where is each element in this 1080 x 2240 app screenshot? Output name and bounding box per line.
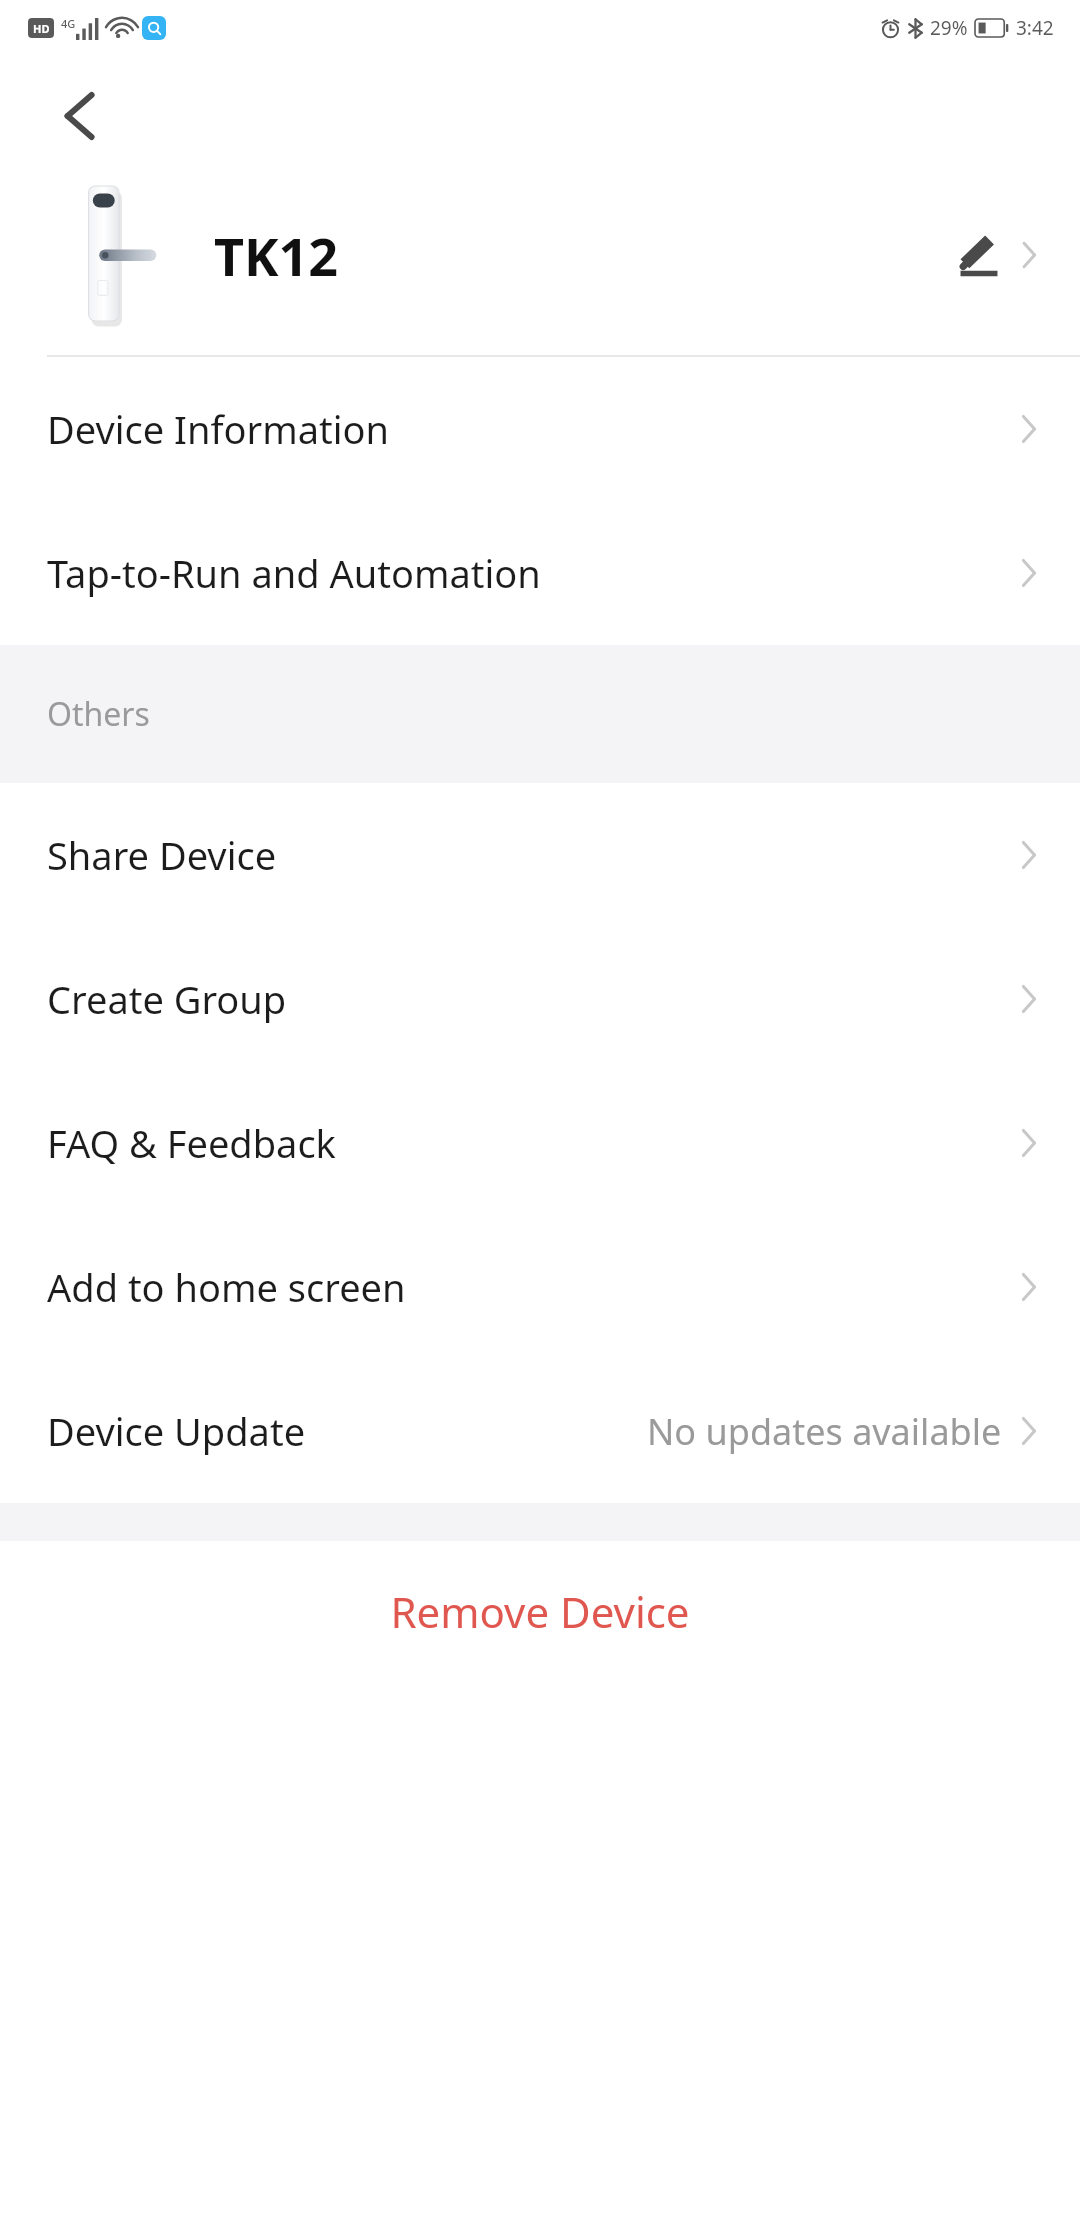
button[interactable]: Remove Device xyxy=(0,1541,1080,1681)
staticText: Others xyxy=(47,692,150,736)
staticText: Tap-to-Run and Automation xyxy=(47,547,541,599)
staticText: Create Group xyxy=(47,973,287,1025)
staticText: HD xyxy=(33,21,50,36)
button[interactable]: Add to home screen xyxy=(0,1215,1080,1359)
staticText: 4G xyxy=(61,16,76,31)
button[interactable]: Device Information xyxy=(0,357,1080,501)
staticText: FAQ & Feedback xyxy=(47,1117,336,1169)
button[interactable]: TK12 xyxy=(0,155,1080,355)
button[interactable]: Rename device xyxy=(949,225,1009,285)
staticText: No updates available xyxy=(647,1407,1002,1456)
staticText: 29% xyxy=(930,15,968,41)
staticText: TK12 xyxy=(214,220,339,291)
staticText: Remove Device xyxy=(390,1583,690,1640)
staticText: Device Information xyxy=(47,403,390,455)
button[interactable]: Share Device xyxy=(0,783,1080,927)
staticText: Device Update xyxy=(47,1405,306,1457)
button[interactable]: FAQ & Feedback xyxy=(0,1071,1080,1215)
button[interactable]: Back xyxy=(40,77,118,155)
staticText: Share Device xyxy=(47,829,277,881)
button[interactable]: Create Group xyxy=(0,927,1080,1071)
button[interactable]: Tap-to-Run and Automation xyxy=(0,501,1080,645)
staticText: 3:42 xyxy=(1016,15,1054,41)
staticText: Add to home screen xyxy=(47,1261,406,1313)
button[interactable]: Device Update xyxy=(0,1359,1080,1503)
